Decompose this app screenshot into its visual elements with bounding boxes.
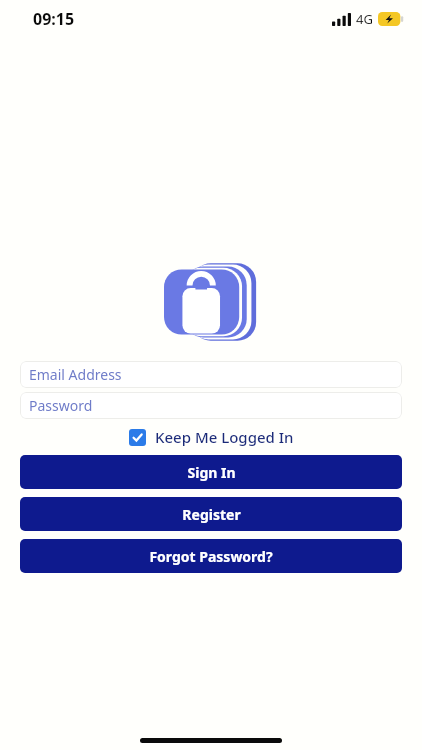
button[interactable]: Email Address	[20, 361, 402, 388]
staticText: Register	[182, 505, 241, 524]
button[interactable]: Sign In	[20, 455, 402, 489]
staticText: 09:15	[33, 8, 75, 30]
button[interactable]: Keep Me Logged In	[127, 425, 296, 449]
staticText: Password	[29, 396, 93, 415]
button[interactable]: Password	[20, 392, 402, 419]
staticText: Forgot Password?	[149, 547, 273, 566]
staticText: Sign In	[187, 463, 236, 482]
button[interactable]: Register	[20, 497, 402, 531]
staticText: Keep Me Logged In	[155, 427, 294, 447]
staticText: Email Address	[29, 365, 122, 384]
staticText: 4G	[356, 10, 373, 28]
button[interactable]: Forgot Password?	[20, 539, 402, 573]
